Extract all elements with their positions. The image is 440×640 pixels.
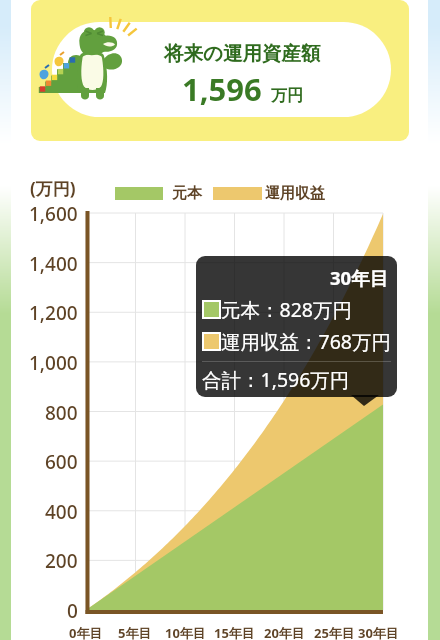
staticText: 1,200 [29,300,78,326]
staticText: 運用収益：768万円 [221,328,391,355]
staticText: 合計：1,596万円 [202,366,350,393]
staticText: 15年目 [214,624,255,640]
staticText: 400 [45,499,78,525]
staticText: 将来の運用資産額 [164,41,321,66]
staticText: (万円) [30,177,76,200]
staticText: 1,400 [29,251,78,277]
staticText: 200 [45,548,78,574]
staticText: 1,000 [29,350,78,376]
staticText: 万円 [271,86,303,106]
staticText: 0年目 [69,624,103,640]
staticText: 30年目 [330,265,389,290]
button[interactable]: 将来の運用資産額 [31,0,409,141]
staticText: 元本 [172,184,202,203]
staticText: 運用収益 [265,184,325,203]
staticText: 元本：828万円 [221,296,352,323]
staticText: 1,596 [182,68,262,110]
staticText: 5年目 [118,624,152,640]
staticText: 600 [45,449,78,475]
staticText: 20年目 [264,624,305,640]
staticText: 0 [67,598,78,624]
staticText: 1,600 [29,201,78,227]
staticText: 30年目 [358,624,399,640]
staticText: 25年目 [314,624,355,640]
staticText: 10年目 [165,624,206,640]
staticText: 800 [45,400,78,426]
